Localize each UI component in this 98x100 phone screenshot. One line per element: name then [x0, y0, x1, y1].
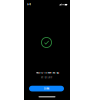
staticText: Set Up Later	[40, 76, 52, 79]
staticText: Face ID is now set up.	[35, 71, 59, 74]
staticText: Done	[44, 87, 49, 90]
button[interactable]: Done	[29, 86, 64, 91]
staticText: 9:41	[27, 3, 31, 6]
